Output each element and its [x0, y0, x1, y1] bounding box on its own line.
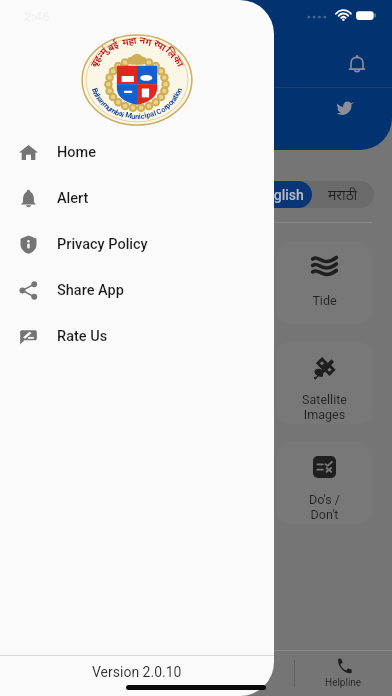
button[interactable]: Helpline	[294, 651, 392, 696]
staticText: 2:46	[24, 9, 50, 24]
button[interactable]: Privacy Policy	[0, 221, 274, 267]
staticText: Do's / Don't	[309, 492, 340, 522]
button[interactable]	[0, 651, 98, 696]
button[interactable]: Tide	[276, 242, 372, 324]
button[interactable]: Share App	[0, 267, 274, 313]
button[interactable]: English	[250, 181, 312, 208]
button[interactable]: Notifications	[335, 42, 379, 86]
button[interactable]: Rate Us	[0, 313, 274, 359]
staticText: Helpline	[325, 677, 362, 689]
button[interactable]	[98, 651, 196, 696]
staticText: 2:46	[24, 9, 50, 24]
staticText: Privacy Policy	[57, 236, 148, 253]
staticText: मराठी	[328, 185, 358, 204]
button[interactable]: Twitter	[325, 87, 365, 127]
staticText: English	[258, 187, 304, 203]
staticText: Tide	[312, 293, 337, 308]
staticText: Rate Us	[57, 328, 108, 345]
button[interactable]: Home	[0, 129, 274, 175]
button[interactable]	[196, 651, 294, 696]
button[interactable]: Do's / Don't	[276, 442, 372, 524]
button[interactable]: Alert	[0, 175, 274, 221]
button[interactable]: मराठी	[312, 181, 374, 208]
staticText: Share App	[57, 282, 124, 299]
button[interactable]: Satellite Images	[276, 342, 372, 424]
staticText: Satellite Images	[302, 392, 347, 422]
staticText: Home	[57, 144, 96, 161]
staticText: Version 2.0.10	[92, 664, 182, 680]
staticText: Alert	[57, 190, 89, 207]
